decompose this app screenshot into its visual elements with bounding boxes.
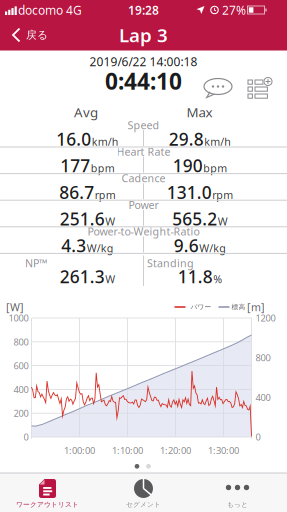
staticText: 19:28 xyxy=(128,2,159,18)
staticText: Lap 3 xyxy=(119,23,168,47)
staticText: 0 xyxy=(255,431,260,443)
staticText: 9.6 xyxy=(174,234,199,257)
staticText: 1:00:00 xyxy=(64,444,95,457)
staticText: セグメント xyxy=(126,500,161,509)
staticText: W/kg xyxy=(87,241,114,255)
staticText: km/h xyxy=(204,134,231,149)
staticText: 190 xyxy=(173,154,203,177)
staticText: 400 xyxy=(13,383,28,396)
staticText: W xyxy=(218,214,228,228)
staticText: rpm xyxy=(212,188,233,202)
staticText: bpm xyxy=(203,161,227,175)
staticText: 16.0 xyxy=(56,127,91,150)
staticText: 1200 xyxy=(255,312,275,324)
staticText: 戻る xyxy=(26,28,48,41)
staticText: rpm xyxy=(95,188,116,202)
staticText: 200 xyxy=(13,407,28,419)
staticText: Avg xyxy=(74,103,98,121)
button[interactable]: Comments xyxy=(203,78,232,98)
staticText: km/h xyxy=(92,134,119,149)
staticText: Cadence xyxy=(121,171,165,185)
button[interactable]: 戻る xyxy=(4,20,56,50)
staticText: 86.7 xyxy=(59,181,94,204)
staticText: もっと xyxy=(227,500,248,509)
staticText: 1:10:00 xyxy=(112,444,143,457)
button[interactable]: セグメント xyxy=(96,473,191,512)
staticText: 1000 xyxy=(8,312,28,324)
staticText: W/kg xyxy=(199,241,226,255)
staticText: Power-to-Weight-Ratio xyxy=(87,224,199,238)
staticText: 11.8 xyxy=(178,265,213,288)
staticText: 0 xyxy=(23,431,28,443)
staticText: bpm xyxy=(91,161,115,175)
staticText: 1:30:00 xyxy=(208,444,239,457)
staticText: [W] xyxy=(6,300,24,314)
staticText: 4.3 xyxy=(61,234,86,257)
staticText: 800 xyxy=(13,336,28,348)
staticText: % xyxy=(213,272,222,286)
staticText: NP™ xyxy=(25,256,47,270)
staticText: パワー xyxy=(190,303,211,311)
staticText: Power xyxy=(128,198,158,212)
staticText: 131.0 xyxy=(167,181,212,204)
staticText: [m] xyxy=(247,300,265,314)
button[interactable]: もっと xyxy=(190,473,285,512)
staticText: Standing xyxy=(147,256,194,270)
staticText: 0:44:10 xyxy=(105,66,182,96)
button[interactable]: Lap display settings xyxy=(247,77,272,98)
staticText: 177 xyxy=(60,154,90,177)
button[interactable]: ワークアウトリスト xyxy=(0,473,95,512)
staticText: W xyxy=(105,214,115,228)
staticText: 800 xyxy=(255,351,270,364)
staticText: Speed xyxy=(127,118,159,132)
staticText: 1:20:00 xyxy=(160,444,191,457)
staticText: 600 xyxy=(13,359,28,372)
staticText: docomo 4G xyxy=(18,2,82,18)
staticText: Heart Rate xyxy=(116,144,170,159)
staticText: 標高 xyxy=(231,303,245,311)
staticText: 251.6 xyxy=(60,207,105,230)
staticText: 565.2 xyxy=(172,207,217,230)
staticText: ワークアウトリスト xyxy=(16,500,79,509)
staticText: 2019/6/22 14:00:18 xyxy=(89,53,197,69)
staticText: 27% xyxy=(222,2,246,18)
staticText: 400 xyxy=(255,391,270,403)
staticText: 29.8 xyxy=(169,127,204,150)
staticText: 261.3 xyxy=(60,265,105,288)
staticText: W xyxy=(105,272,115,286)
staticText: Max xyxy=(186,103,212,121)
